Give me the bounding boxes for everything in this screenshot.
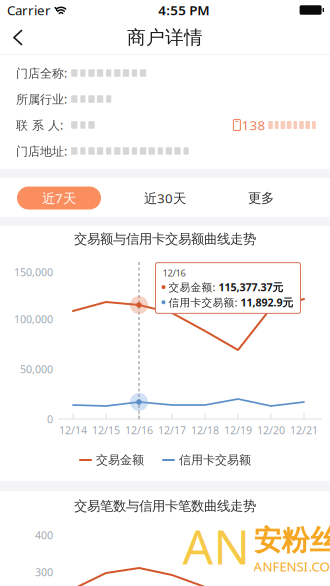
staticText: 交易额与信用卡交易额曲线走势 bbox=[74, 231, 256, 247]
staticText: 12/20 bbox=[257, 423, 285, 437]
staticText: 12/16 bbox=[125, 423, 153, 437]
staticText: 12/18 bbox=[191, 423, 219, 437]
button[interactable]: Call contact bbox=[232, 116, 317, 134]
staticText: 11,892.9元 bbox=[240, 295, 293, 309]
button[interactable]: Back bbox=[0, 20, 37, 54]
staticText: 近30天 bbox=[144, 189, 186, 207]
staticText: 12/21 bbox=[290, 423, 318, 437]
staticText: 138 bbox=[241, 116, 265, 134]
staticText: 商户详情 bbox=[127, 26, 203, 49]
staticText: 门店地址: bbox=[16, 143, 67, 159]
button[interactable]: 近30天 bbox=[123, 186, 207, 209]
staticText: 100,000 bbox=[14, 312, 53, 326]
staticText: 12/17 bbox=[158, 423, 186, 437]
button[interactable]: 更多 bbox=[219, 186, 303, 209]
staticText: 更多 bbox=[248, 190, 274, 206]
staticText: 门店全称: bbox=[16, 65, 67, 81]
staticText: 信用卡交易额: bbox=[168, 295, 240, 309]
staticText: AN bbox=[182, 514, 249, 578]
staticText: 交易笔数与信用卡笔数曲线走势 bbox=[74, 498, 256, 514]
staticText: 近7天 bbox=[42, 189, 76, 207]
staticText: 115,377.37元 bbox=[218, 280, 283, 294]
staticText: 50,000 bbox=[20, 362, 53, 376]
staticText: ANFENSI.COM bbox=[253, 557, 330, 575]
staticText: 交易金额 bbox=[96, 453, 144, 467]
staticText: 400 bbox=[35, 528, 53, 542]
staticText: 信用卡交易额 bbox=[179, 453, 251, 467]
staticText: 0 bbox=[47, 412, 53, 426]
button[interactable]: 近7天 bbox=[17, 186, 101, 209]
staticText: 安粉丝 bbox=[253, 523, 330, 557]
staticText: 12/16 bbox=[162, 267, 185, 279]
staticText: 所属行业: bbox=[16, 91, 67, 107]
staticText: 联 系 人: bbox=[16, 117, 63, 133]
staticText: 150,000 bbox=[14, 265, 53, 279]
staticText: Carrier bbox=[7, 1, 51, 19]
staticText: 交易金额: bbox=[168, 280, 218, 294]
staticText: 12/19 bbox=[224, 423, 252, 437]
staticText: 12/14 bbox=[59, 423, 87, 437]
staticText: 4:55 PM bbox=[158, 1, 209, 19]
staticText: 300 bbox=[35, 565, 53, 579]
staticText: 12/15 bbox=[92, 423, 120, 437]
